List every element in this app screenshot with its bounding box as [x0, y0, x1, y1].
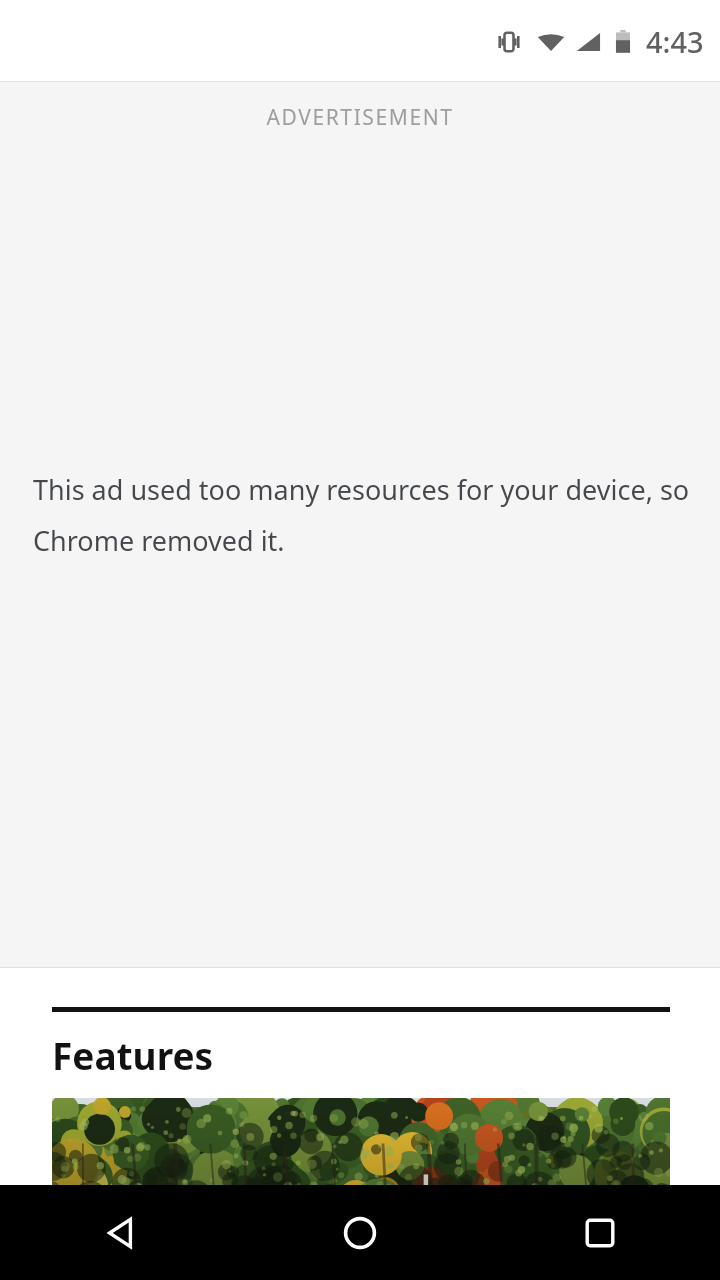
- button[interactable]: ADVERTISEMENT: [0, 82, 720, 968]
- button[interactable]: [52, 1098, 720, 1280]
- button[interactable]: Home: [240, 1185, 480, 1280]
- staticText: 4:43: [646, 22, 704, 61]
- button[interactable]: Features: [52, 1030, 214, 1080]
- staticText: Chrome removed it.: [33, 522, 285, 559]
- button[interactable]: Back: [0, 1185, 240, 1280]
- button[interactable]: Recent apps: [480, 1185, 720, 1280]
- staticText: This ad used too many resources for your…: [33, 471, 690, 508]
- staticText: ADVERTISEMENT: [266, 103, 454, 132]
